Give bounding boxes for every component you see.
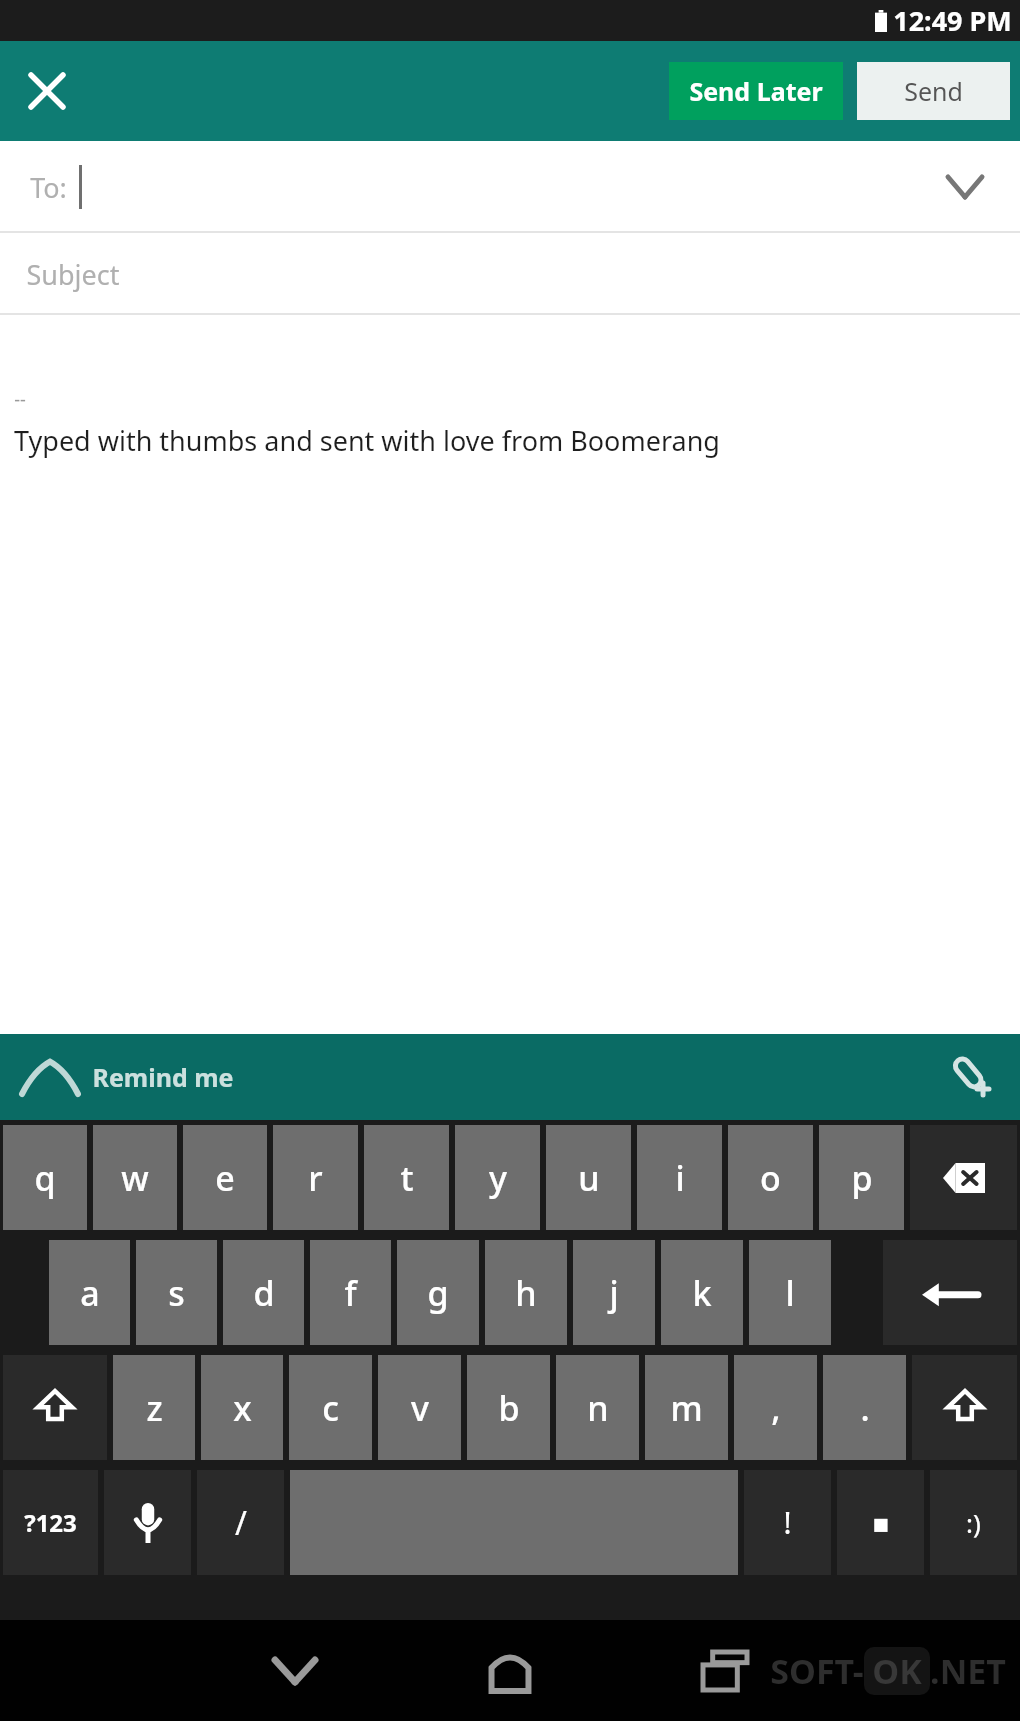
- button[interactable]: Shift: [3, 1355, 107, 1460]
- button[interactable]: Enter: [883, 1240, 1017, 1345]
- staticText: p: [851, 1155, 873, 1201]
- staticText: f: [344, 1270, 357, 1316]
- button[interactable]: p: [819, 1125, 904, 1230]
- staticText: k: [692, 1270, 712, 1316]
- staticText: r: [308, 1155, 323, 1201]
- button[interactable]: l: [749, 1240, 831, 1345]
- staticText: q: [34, 1155, 56, 1201]
- staticText: /: [235, 1501, 247, 1545]
- button[interactable]: Recent apps: [680, 1626, 770, 1716]
- staticText: l: [785, 1270, 795, 1316]
- button[interactable]: y: [455, 1125, 540, 1230]
- button[interactable]: o: [728, 1125, 813, 1230]
- staticText: m: [670, 1385, 703, 1431]
- staticText: ?123: [24, 1506, 77, 1539]
- staticText: Subject: [26, 256, 120, 293]
- button[interactable]: Expand recipients: [934, 156, 996, 218]
- button[interactable]: m: [645, 1355, 728, 1460]
- staticText: e: [215, 1155, 235, 1201]
- staticText: 12:49 PM: [893, 2, 1012, 39]
- button[interactable]: h: [485, 1240, 567, 1345]
- staticText: z: [146, 1385, 163, 1431]
- staticText: .: [860, 1385, 870, 1431]
- staticText: s: [168, 1270, 185, 1316]
- staticText: --: [14, 387, 26, 412]
- button[interactable]: d: [223, 1240, 304, 1345]
- button[interactable]: ,: [734, 1355, 817, 1460]
- button[interactable]: j: [573, 1240, 655, 1345]
- staticText: v: [411, 1385, 429, 1431]
- button[interactable]: Emoji: [930, 1470, 1017, 1575]
- staticText: Send: [904, 74, 963, 108]
- staticText: g: [427, 1270, 449, 1316]
- button[interactable]: Backspace: [910, 1125, 1017, 1230]
- staticText: i: [675, 1155, 685, 1201]
- button[interactable]: Send Later: [669, 62, 843, 120]
- staticText: SOFT-: [770, 1648, 864, 1694]
- staticText: x: [233, 1385, 252, 1431]
- button[interactable]: Home: [465, 1626, 555, 1716]
- staticText: ▪: [872, 1508, 890, 1538]
- staticText: !: [783, 1502, 792, 1543]
- staticText: w: [121, 1155, 149, 1201]
- button[interactable]: Send: [857, 62, 1010, 120]
- button[interactable]: /: [197, 1470, 284, 1575]
- button[interactable]: u: [546, 1125, 631, 1230]
- staticText: n: [587, 1385, 609, 1431]
- staticText: Send Later: [689, 74, 823, 108]
- staticText: To:: [30, 169, 67, 206]
- button[interactable]: z: [113, 1355, 195, 1460]
- button[interactable]: Voice input: [104, 1470, 191, 1575]
- button[interactable]: w: [93, 1125, 177, 1230]
- button[interactable]: t: [364, 1125, 449, 1230]
- button[interactable]: Close: [14, 58, 80, 124]
- staticText: o: [760, 1155, 781, 1201]
- button[interactable]: b: [467, 1355, 550, 1460]
- button[interactable]: ?123: [3, 1470, 98, 1575]
- staticText: .NET: [930, 1648, 1006, 1694]
- button[interactable]: c: [289, 1355, 372, 1460]
- button[interactable]: f: [310, 1240, 391, 1345]
- staticText: j: [609, 1270, 619, 1316]
- staticText: Remind me: [92, 1060, 234, 1094]
- button[interactable]: Shift: [912, 1355, 1017, 1460]
- button[interactable]: .: [823, 1355, 906, 1460]
- button[interactable]: a: [49, 1240, 130, 1345]
- button[interactable]: v: [378, 1355, 461, 1460]
- button[interactable]: !: [744, 1470, 831, 1575]
- button[interactable]: x: [201, 1355, 283, 1460]
- button[interactable]: i: [637, 1125, 722, 1230]
- button[interactable]: n: [556, 1355, 639, 1460]
- button[interactable]: ▪: [837, 1470, 924, 1575]
- staticText: Typed with thumbs and sent with love fro…: [14, 422, 720, 459]
- staticText: ,: [771, 1385, 781, 1431]
- button[interactable]: e: [183, 1125, 267, 1230]
- staticText: a: [80, 1270, 100, 1316]
- staticText: d: [253, 1270, 275, 1316]
- button[interactable]: Remind me: [22, 1060, 234, 1094]
- button[interactable]: Add attachment: [942, 1047, 1002, 1107]
- staticText: OK: [872, 1648, 922, 1694]
- staticText: t: [400, 1155, 414, 1201]
- staticText: b: [498, 1385, 520, 1431]
- staticText: c: [322, 1385, 339, 1431]
- staticText: h: [515, 1270, 537, 1316]
- button[interactable]: s: [136, 1240, 217, 1345]
- button[interactable]: Hide keyboard: [250, 1626, 340, 1716]
- button[interactable]: g: [397, 1240, 479, 1345]
- button[interactable]: r: [273, 1125, 358, 1230]
- button[interactable]: q: [3, 1125, 87, 1230]
- staticText: :): [966, 1505, 981, 1540]
- staticText: y: [489, 1155, 507, 1201]
- staticText: u: [578, 1155, 600, 1201]
- button[interactable]: k: [661, 1240, 743, 1345]
